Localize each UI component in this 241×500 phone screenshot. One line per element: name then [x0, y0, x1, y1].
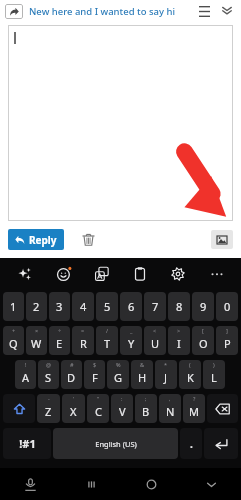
button[interactable]: ,	[159, 394, 181, 423]
button[interactable]: -	[37, 394, 60, 423]
staticText: B	[142, 404, 150, 419]
button[interactable]: 9	[192, 292, 214, 321]
button[interactable]: %	[107, 360, 129, 389]
staticText: ;	[145, 395, 147, 402]
staticText: "	[97, 395, 100, 402]
button[interactable]: More options	[203, 260, 230, 287]
staticText: ]	[226, 327, 228, 334]
staticText: (	[189, 361, 191, 368]
button[interactable]: Insert image	[211, 230, 233, 249]
staticText: =	[81, 327, 85, 334]
button[interactable]: )	[203, 360, 225, 389]
staticText: 2	[33, 299, 40, 314]
staticText: ×	[35, 327, 39, 334]
button[interactable]: !#1	[3, 428, 51, 459]
button[interactable]: 6	[120, 292, 142, 321]
staticText: D	[67, 370, 76, 385]
staticText: S	[45, 370, 52, 385]
staticText: &	[140, 361, 145, 368]
staticText: @	[46, 361, 51, 368]
button[interactable]: @	[38, 360, 59, 389]
staticText: )	[213, 361, 215, 368]
staticText: A	[22, 370, 30, 385]
staticText: $	[93, 361, 97, 368]
button[interactable]: '	[62, 394, 85, 423]
staticText: J	[164, 370, 168, 385]
button[interactable]: &	[131, 360, 153, 389]
button[interactable]: 4	[72, 292, 94, 321]
button[interactable]: Voice input	[0, 468, 61, 500]
staticText: K	[187, 370, 194, 385]
button[interactable]: >	[168, 326, 190, 355]
button[interactable]: Emoji	[50, 260, 77, 287]
button[interactable]: AI assist	[11, 260, 38, 287]
button[interactable]: _	[120, 326, 142, 355]
button[interactable]: ÷	[49, 326, 70, 355]
button[interactable]: "	[87, 394, 109, 423]
button[interactable]: 2	[26, 292, 47, 321]
staticText: 7	[152, 299, 159, 314]
staticText: #	[70, 361, 74, 368]
button[interactable]: /	[96, 326, 118, 355]
button[interactable]: Clipboard	[126, 260, 153, 287]
button[interactable]: =	[72, 326, 94, 355]
button[interactable]: $	[84, 360, 105, 389]
staticText: Z	[45, 404, 52, 419]
staticText: +	[12, 327, 16, 334]
button[interactable]: Recent apps	[61, 468, 121, 500]
button[interactable]: English (US)	[53, 428, 178, 459]
staticText: _	[130, 327, 133, 334]
button[interactable]: ×	[26, 326, 47, 355]
staticText: 8	[176, 299, 183, 314]
staticText: U	[151, 336, 160, 351]
staticText: !#1	[19, 436, 36, 451]
button[interactable]: 0	[216, 292, 238, 321]
button[interactable]: (	[179, 360, 201, 389]
button[interactable]: Delete	[78, 229, 98, 249]
button[interactable]: ;	[135, 394, 157, 423]
button[interactable]: Keyboard settings	[164, 260, 191, 287]
button[interactable]: Collapse	[218, 2, 236, 20]
button[interactable]: Backspace	[207, 394, 238, 423]
button[interactable]: Hide keyboard	[181, 468, 241, 500]
button[interactable]: 7	[144, 292, 166, 321]
staticText: Y	[128, 336, 135, 351]
button[interactable]: 1	[3, 292, 24, 321]
staticText: Q	[9, 336, 18, 351]
staticText: N	[166, 404, 175, 419]
button[interactable]: Menu	[195, 2, 213, 20]
button[interactable]: 8	[168, 292, 190, 321]
button[interactable]: 5	[96, 292, 118, 321]
button[interactable]: ?	[183, 394, 205, 423]
staticText: ÷	[58, 327, 62, 334]
button[interactable]: !	[15, 360, 36, 389]
button[interactable]: Home	[121, 468, 181, 500]
button[interactable]: .	[180, 428, 202, 459]
button[interactable]: +	[3, 326, 24, 355]
staticText: ,	[169, 395, 171, 402]
staticText: English (US)	[95, 439, 137, 449]
staticText: F	[92, 370, 98, 385]
button[interactable]: :	[111, 394, 133, 423]
button[interactable]: Reply	[8, 229, 64, 250]
staticText: O	[199, 336, 208, 351]
button[interactable]: 3	[49, 292, 70, 321]
button[interactable]: [	[192, 326, 214, 355]
staticText: 9	[200, 299, 207, 314]
button[interactable]: Enter	[204, 428, 238, 459]
button[interactable]: Translate	[88, 260, 115, 287]
staticText: 3	[56, 299, 63, 314]
staticText: 5	[104, 299, 111, 314]
staticText: 6	[128, 299, 135, 314]
button[interactable]: <	[144, 326, 166, 355]
button[interactable]: #	[61, 360, 82, 389]
button[interactable]: Forward	[5, 4, 23, 19]
button[interactable]: ]	[216, 326, 238, 355]
staticText: .	[190, 437, 193, 451]
staticText: -	[48, 395, 50, 402]
button[interactable]: *	[155, 360, 177, 389]
button[interactable]	[8, 25, 233, 221]
staticText: !	[25, 361, 27, 368]
button[interactable]: Shift	[3, 394, 35, 423]
staticText: P	[224, 336, 231, 351]
